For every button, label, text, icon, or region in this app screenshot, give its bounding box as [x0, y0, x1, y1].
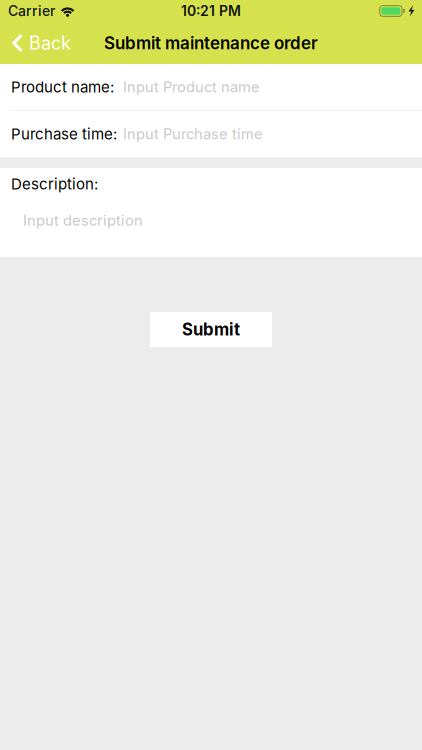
staticText: Purchase time: — [11, 125, 117, 143]
staticText: Input Purchase time — [123, 125, 263, 143]
button[interactable]: Purchase time: — [0, 111, 422, 157]
staticText: Product name: — [11, 78, 114, 96]
staticText: Input Product name — [123, 78, 260, 96]
staticText: Carrier — [8, 2, 55, 19]
button[interactable]: Input description — [0, 200, 422, 257]
staticText: Back — [29, 32, 71, 54]
staticText: Description: — [11, 175, 98, 193]
button[interactable]: Submit — [150, 312, 272, 347]
button[interactable]: Product name: — [0, 64, 422, 110]
staticText: Submit maintenance order — [104, 33, 318, 53]
staticText: Submit — [182, 319, 240, 340]
staticText: Input description — [23, 212, 143, 229]
staticText: 10:21 PM — [181, 2, 241, 19]
button[interactable]: Back — [0, 22, 81, 64]
